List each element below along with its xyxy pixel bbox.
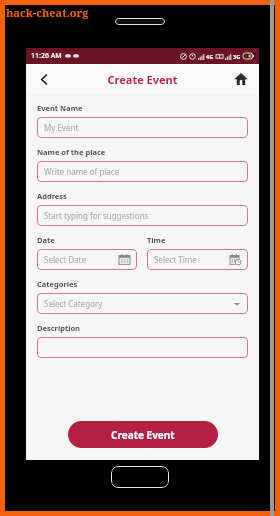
- staticText: Select Date: [44, 254, 119, 265]
- button[interactable]: Create Event: [68, 421, 218, 448]
- staticText: Date: [37, 235, 55, 245]
- staticText: 3G: [233, 53, 241, 60]
- staticText: My Event: [44, 122, 241, 133]
- staticText: Select Time: [154, 254, 230, 265]
- button[interactable]: [37, 337, 248, 358]
- button[interactable]: Start typing for suggestions: [37, 205, 248, 226]
- button[interactable]: Select Date: [37, 249, 137, 270]
- staticText: hack-cheat.org: [6, 5, 89, 20]
- staticText: Write name of place: [44, 166, 241, 177]
- staticText: Name of the place: [37, 147, 106, 157]
- button[interactable]: Back: [32, 67, 56, 91]
- staticText: Categories: [37, 279, 78, 289]
- staticText: Time: [147, 235, 166, 245]
- staticText: Select Category: [44, 298, 233, 309]
- button[interactable]: Home: [229, 67, 253, 91]
- staticText: Start typing for suggestions: [44, 210, 241, 221]
- staticText: Address: [37, 191, 67, 201]
- button[interactable]: Select Time: [147, 249, 248, 270]
- staticText: 4G: [206, 53, 214, 60]
- staticText: Event Name: [37, 103, 83, 113]
- staticText: Create Event: [111, 428, 175, 442]
- staticText: Description: [37, 323, 80, 333]
- staticText: Create Event: [56, 72, 229, 87]
- button[interactable]: Write name of place: [37, 161, 248, 182]
- button[interactable]: Home button: [111, 466, 169, 488]
- button[interactable]: Select Category: [37, 293, 248, 314]
- staticText: 11:26 AM: [31, 51, 62, 61]
- button[interactable]: My Event: [37, 117, 248, 138]
